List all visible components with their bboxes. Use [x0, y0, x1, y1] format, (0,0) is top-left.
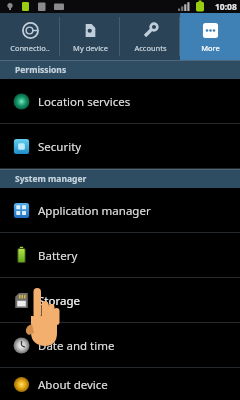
staticText: More [201, 43, 220, 53]
button[interactable]: Connectio.. [0, 13, 60, 60]
staticText: Accounts [134, 43, 167, 53]
staticText: 10:08 [215, 1, 237, 13]
button[interactable]: Application manager [0, 188, 240, 232]
button[interactable]: Date and time [0, 323, 240, 367]
button[interactable]: My device [60, 13, 120, 60]
staticText: Date and time [38, 338, 115, 354]
staticText: Permissions [15, 64, 67, 76]
button[interactable]: Location services [0, 79, 240, 123]
staticText: Security [38, 139, 82, 155]
button[interactable]: About device [0, 368, 240, 400]
staticText: System manager [15, 173, 87, 185]
button[interactable]: Security [0, 124, 240, 168]
staticText: Location services [38, 94, 131, 110]
staticText: Battery [38, 248, 78, 264]
button[interactable]: Storage [0, 278, 240, 322]
staticText: About device [38, 377, 108, 393]
staticText: Connectio.. [10, 43, 50, 53]
button[interactable]: Battery [0, 233, 240, 277]
staticText: Storage [38, 293, 80, 309]
button[interactable]: More [180, 13, 240, 60]
staticText: My device [73, 43, 108, 53]
button[interactable]: Accounts [120, 13, 180, 60]
staticText: Application manager [38, 203, 151, 219]
